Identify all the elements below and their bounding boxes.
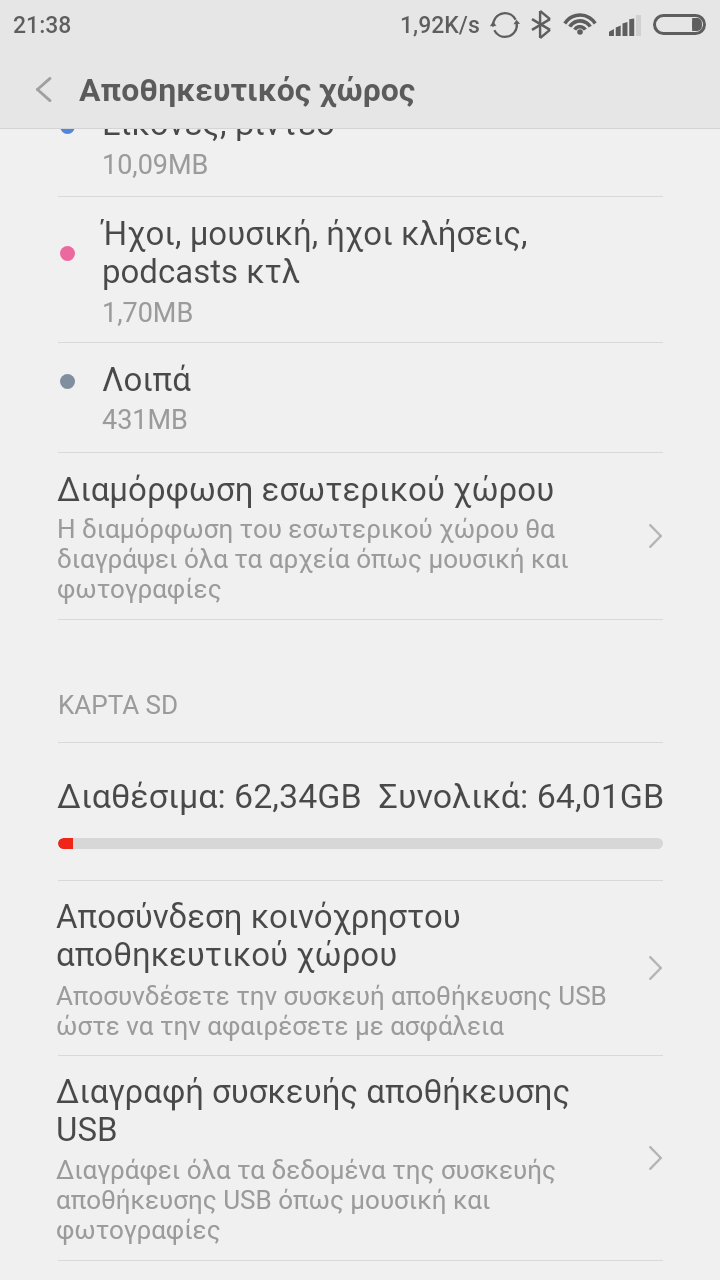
staticText: Διαθέσιμα: 62,34GB Συνολικά: 64,01GB xyxy=(57,776,665,816)
staticText: Διαγράφει όλα τα δεδομένα της συσκευής α… xyxy=(56,1155,556,1245)
staticText: 1,70MB xyxy=(102,297,194,329)
button[interactable]: Διαμόρφωση εσωτερικού χώρου xyxy=(0,453,720,619)
staticText: Αποσύνδεση κοινόχρηστου αποθηκευτικού χώ… xyxy=(56,897,461,974)
staticText: Λοιπά xyxy=(102,360,191,399)
staticText: 1,92K/s xyxy=(400,12,480,39)
staticText: Διαμόρφωση εσωτερικού χώρου xyxy=(57,470,555,509)
button[interactable]: Αποσύνδεση κοινόχρηστου αποθηκευτικού χώ… xyxy=(0,881,720,1055)
staticText: 21:38 xyxy=(13,12,72,39)
button[interactable]: Εικόνες, βίντεο xyxy=(0,100,720,196)
staticText: Διαγραφή συσκευής αποθήκευσης USB xyxy=(56,1072,571,1149)
staticText: Ήχοι, μουσική, ήχοι κλήσεις, podcasts κτ… xyxy=(102,214,528,291)
staticText: ΚΑΡΤΑ SD xyxy=(58,690,179,720)
staticText: Αποσυνδέσετε την συσκευή αποθήκευσης USB… xyxy=(56,981,607,1041)
staticText: Εικόνες, βίντεο xyxy=(102,104,335,143)
staticText: Αποθηκευτικός χώρος xyxy=(79,71,416,109)
staticText: 431MB xyxy=(102,404,188,436)
button[interactable]: Ήχοι, μουσική, ήχοι κλήσεις, podcasts κτ… xyxy=(0,197,720,342)
button[interactable]: Back xyxy=(16,62,70,116)
staticText: Η διαμόρφωση του εσωτερικού χώρου θα δια… xyxy=(57,514,569,604)
button[interactable]: Διαγραφή συσκευής αποθήκευσης USB xyxy=(0,1056,720,1260)
button[interactable]: Λοιπά xyxy=(0,343,720,452)
staticText: 10,09MB xyxy=(102,149,209,181)
